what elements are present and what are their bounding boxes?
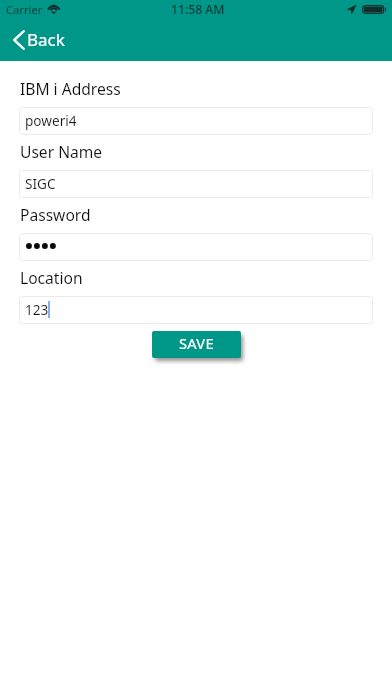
staticText: IBM i Address [20, 78, 121, 99]
other: Battery full [362, 5, 386, 14]
button[interactable]: SAVE [152, 331, 241, 358]
button[interactable]: poweri4 [19, 107, 373, 135]
staticText: Location [20, 267, 83, 288]
button[interactable]: 123 [19, 296, 373, 324]
staticText: User Name [20, 141, 103, 162]
staticText: 123 [25, 300, 49, 319]
staticText: Back [27, 28, 65, 51]
button[interactable]: Back [0, 24, 77, 56]
staticText: 11:58 AM [171, 1, 225, 18]
staticText: Password [20, 204, 91, 225]
staticText: Carrier [6, 2, 43, 17]
other: Back [13, 30, 25, 50]
staticText: SAVE [179, 333, 214, 353]
button[interactable]: SIGC [19, 170, 373, 198]
other: Wi-Fi connected [47, 3, 61, 14]
other: Location services active [346, 4, 357, 15]
staticText: SIGC [25, 174, 56, 193]
other: Password hidden [26, 240, 58, 252]
staticText: poweri4 [25, 111, 77, 130]
button[interactable]: Password hidden [19, 233, 373, 261]
